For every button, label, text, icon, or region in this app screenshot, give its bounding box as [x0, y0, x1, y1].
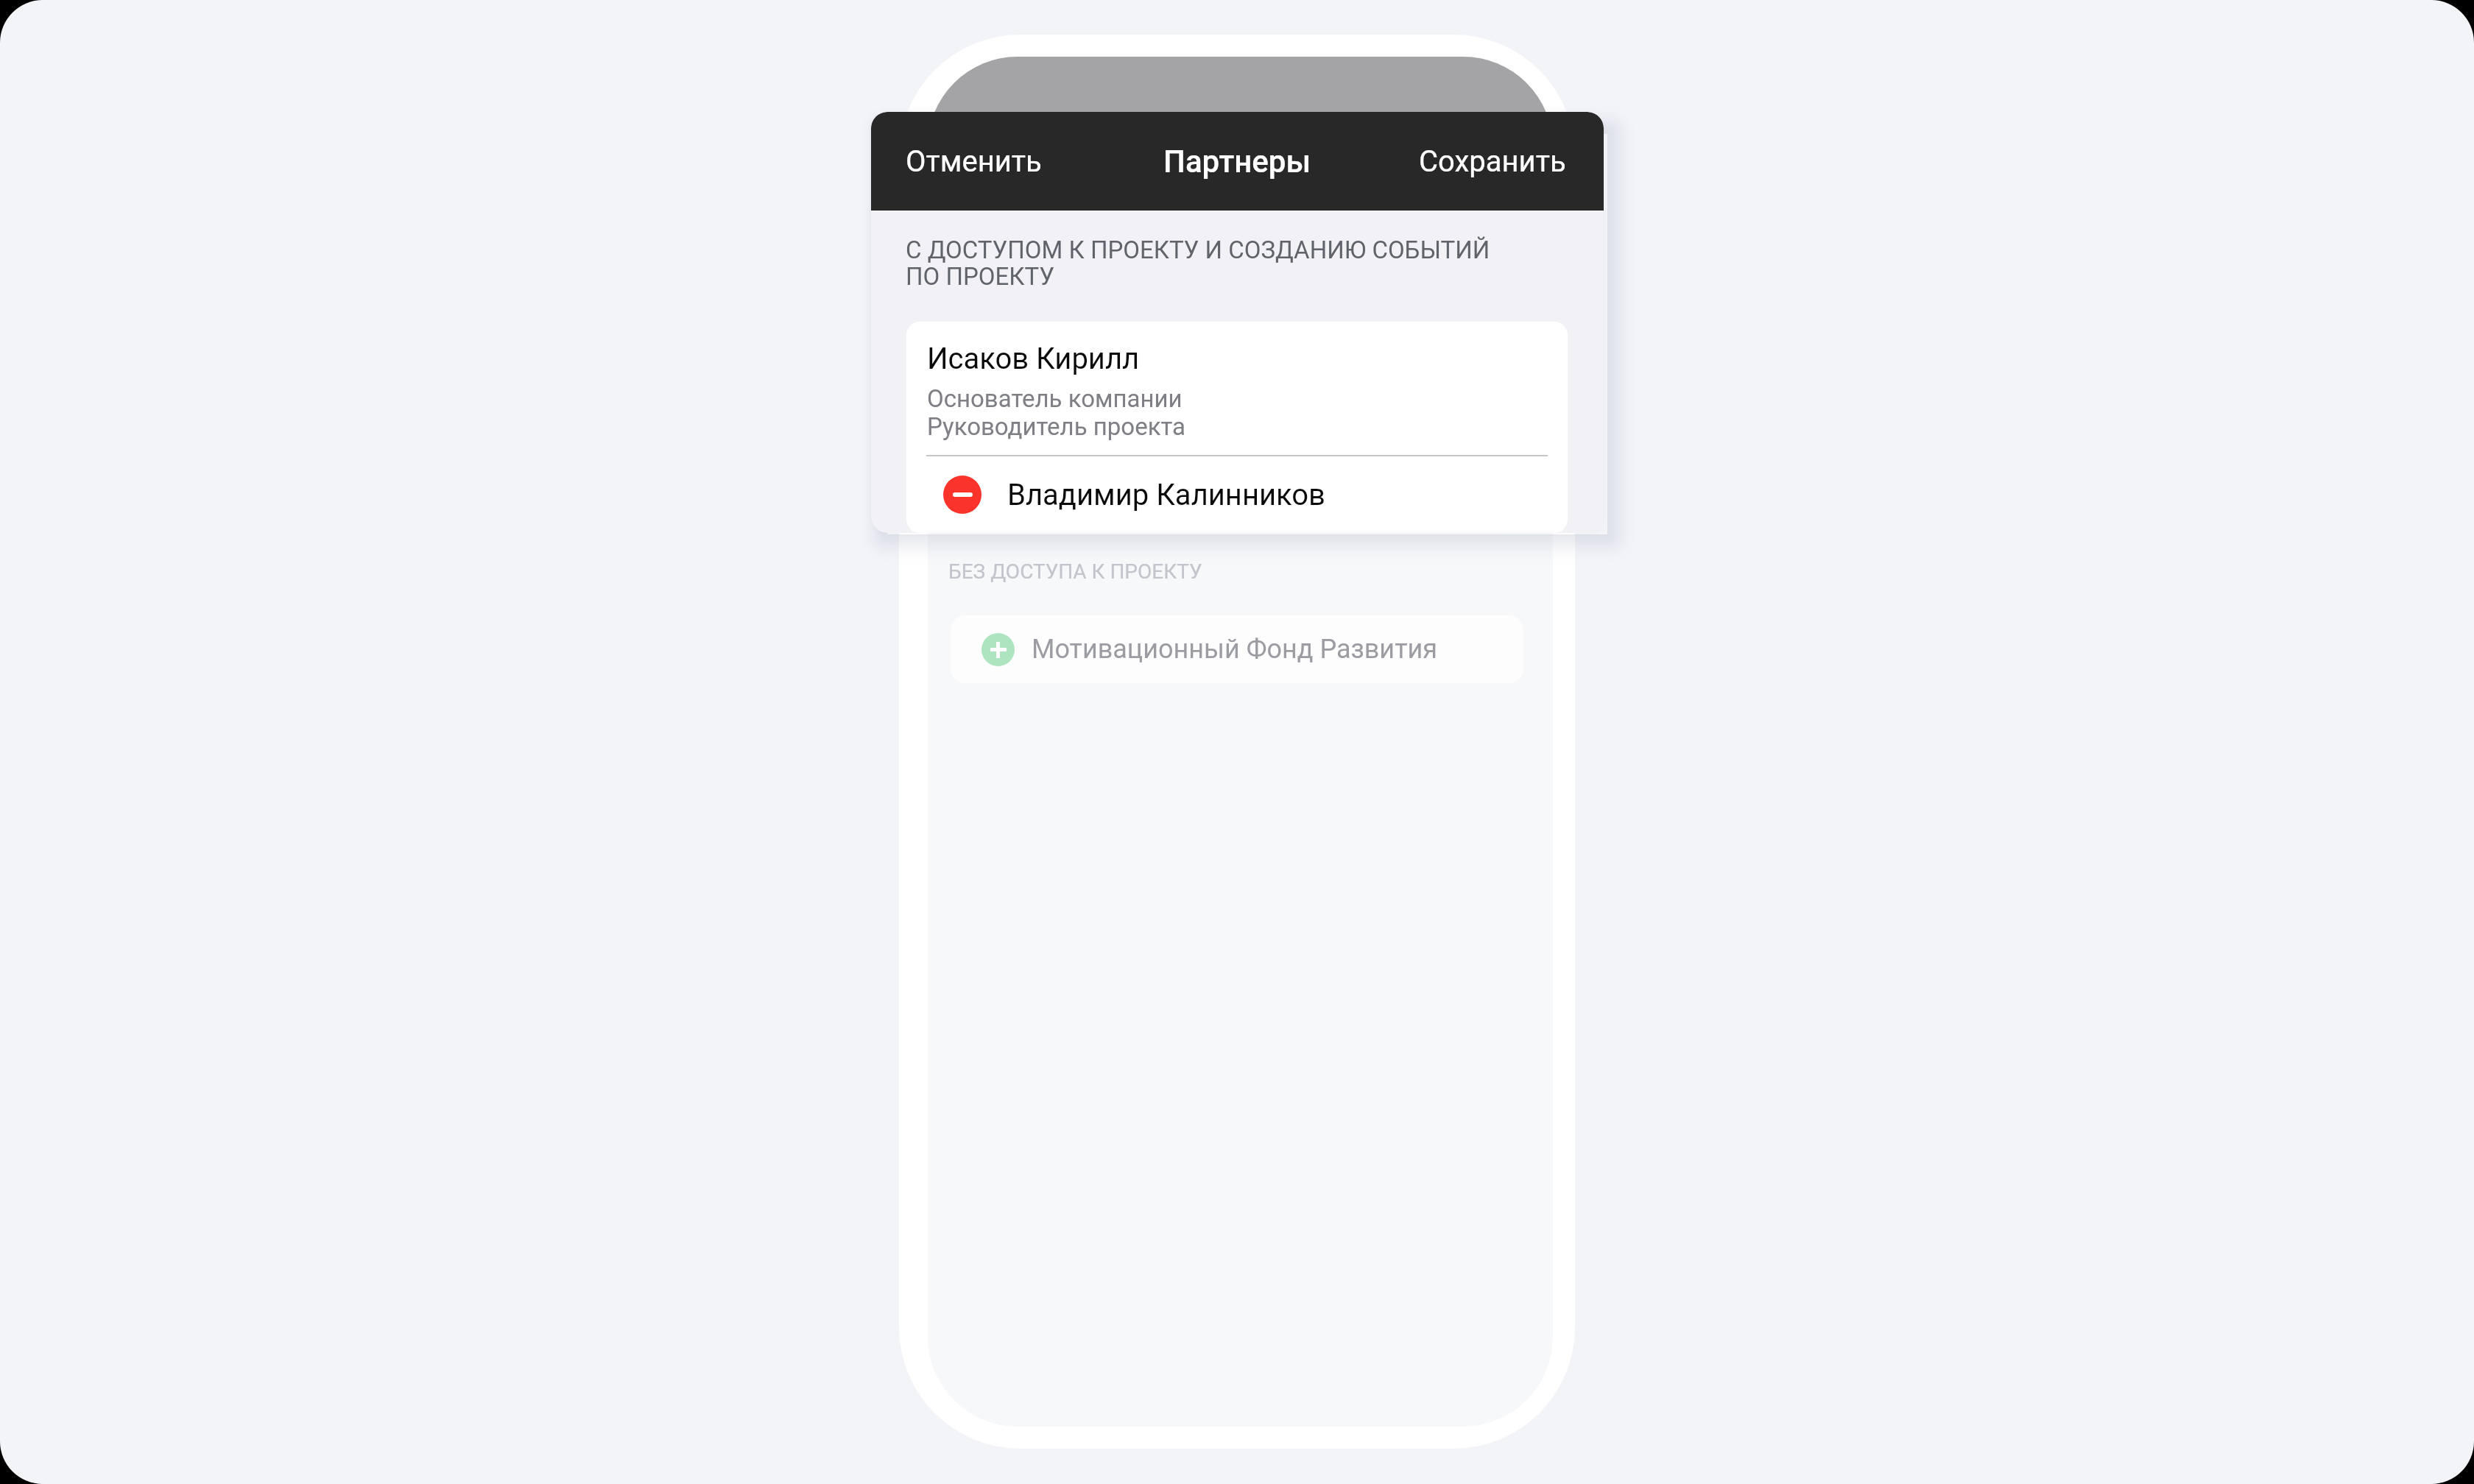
staticText: Отменить	[906, 144, 1042, 179]
button[interactable]: Сохранить	[1398, 124, 1604, 199]
staticText: БЕЗ ДОСТУПА К ПРОЕКТУ	[948, 559, 1202, 584]
button[interactable]: Добавить партнёра	[982, 633, 1015, 666]
button[interactable]: Добавить партнёра	[951, 615, 1523, 683]
staticText: Мотивационный Фонд Развития	[1032, 634, 1437, 665]
staticText: С ДОСТУПОМ К ПРОЕКТУ И СОЗДАНИЮ СОБЫТИЙ …	[906, 236, 1490, 291]
staticText: Сохранить	[1419, 144, 1566, 179]
staticText: Основатель компании Руководитель проекта	[927, 384, 1186, 441]
staticText: Партнеры	[1163, 144, 1311, 180]
button[interactable]: Удалить партнёра	[906, 456, 1568, 533]
staticText: Исаков Кирилл	[927, 342, 1140, 376]
button[interactable]: Удалить партнёра	[943, 476, 982, 514]
button[interactable]: Отменить	[871, 124, 1062, 199]
staticText: Владимир Калинников	[1007, 478, 1325, 512]
